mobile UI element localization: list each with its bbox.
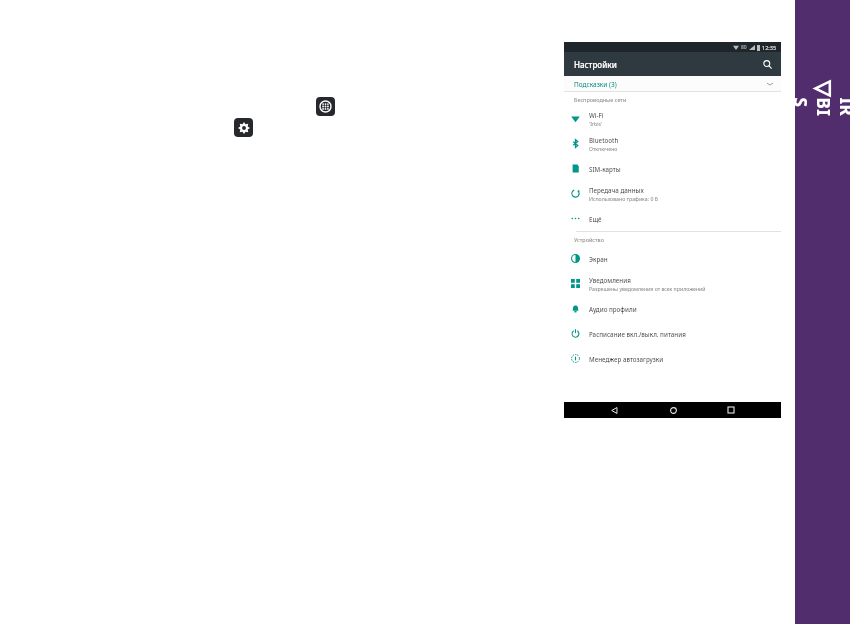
button[interactable]: Аудио профили	[564, 296, 781, 321]
staticText: Wi-Fi	[589, 111, 604, 119]
button[interactable]: Settings	[234, 118, 253, 137]
button[interactable]: Экран	[564, 246, 781, 271]
staticText: Аудио профили	[589, 305, 637, 313]
staticText: Отключено	[589, 145, 618, 152]
button[interactable]: Recents	[723, 402, 739, 418]
staticText: 12:35	[762, 44, 777, 51]
staticText: SIM-карты	[589, 165, 621, 173]
staticText: 80	[741, 44, 747, 51]
staticText: Передача данных	[589, 186, 644, 194]
staticText: IRBIS	[788, 97, 850, 120]
button[interactable]: SIM-карты	[564, 156, 781, 181]
staticText: Беспроводные сети	[574, 96, 627, 103]
button[interactable]: Расписание вкл./выкл. питания	[564, 321, 781, 346]
button[interactable]: Ещё	[564, 206, 781, 231]
button[interactable]: Back	[606, 402, 622, 418]
staticText: Настройки	[574, 59, 617, 70]
staticText: Ещё	[589, 215, 602, 223]
staticText: 'Irbis'	[589, 120, 603, 127]
button[interactable]: Bluetooth	[564, 131, 781, 156]
staticText: Устройство	[574, 236, 604, 243]
button[interactable]: Уведомления	[564, 271, 781, 296]
button[interactable]: Home	[665, 402, 681, 418]
button[interactable]: Wi-Fi	[564, 106, 781, 131]
button[interactable]: Передача данных	[564, 181, 781, 206]
button[interactable]: Менеджер автозагрузки	[564, 346, 781, 371]
staticText: Подсказки (3)	[574, 80, 617, 89]
staticText: Bluetooth	[589, 136, 619, 144]
staticText: Экран	[589, 255, 608, 263]
button[interactable]: Search	[759, 56, 775, 72]
staticText: Уведомления	[589, 276, 631, 284]
staticText: Расписание вкл./выкл. питания	[589, 330, 686, 338]
staticText: Использовано трафика: 0 Б	[589, 195, 658, 202]
button[interactable]: Подсказки (3)	[564, 76, 781, 92]
staticText: Менеджер автозагрузки	[589, 355, 664, 363]
staticText: Разрешены уведомления от всех приложений	[589, 285, 706, 292]
button[interactable]: All apps	[316, 97, 335, 116]
